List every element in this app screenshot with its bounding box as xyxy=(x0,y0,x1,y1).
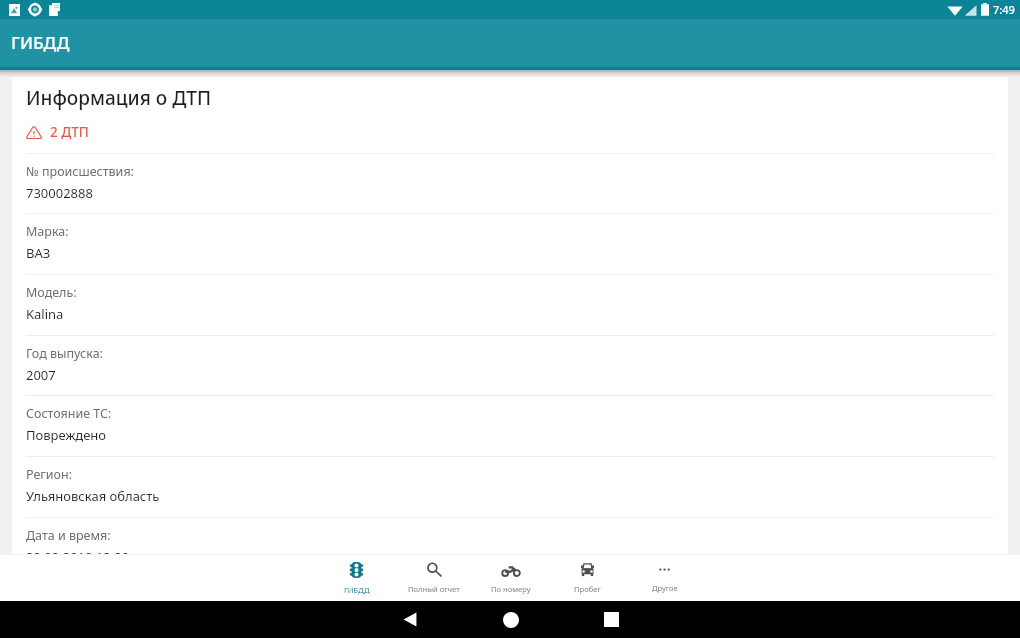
button[interactable]: Модель: xyxy=(12,275,1008,335)
staticText: Регион: xyxy=(26,466,73,483)
staticText: Марка: xyxy=(26,223,69,240)
staticText: Состояние ТС: xyxy=(26,405,112,422)
button[interactable]: Recents xyxy=(561,601,662,638)
staticText: 22.02.2018 13:20 xyxy=(26,548,130,554)
button[interactable]: Регион: xyxy=(12,457,1008,517)
staticText: Год выпуска: xyxy=(26,345,103,362)
staticText: Дата и время: xyxy=(26,527,111,544)
staticText: Полный отчет xyxy=(408,584,460,594)
staticText: ВАЗ xyxy=(26,244,51,262)
staticText: Информация о ДТП xyxy=(26,85,212,111)
staticText: По номеру xyxy=(491,584,531,594)
button[interactable]: ГИБДД xyxy=(318,555,395,601)
staticText: Другое xyxy=(652,583,678,593)
button[interactable]: Другое xyxy=(626,555,703,601)
staticText: 730002888 xyxy=(26,184,93,202)
button[interactable]: Марка: xyxy=(12,214,1008,274)
staticText: ГИБДД xyxy=(11,31,70,54)
button[interactable]: Год выпуска: xyxy=(12,336,1008,395)
button[interactable]: № происшествия: xyxy=(12,154,1008,213)
button[interactable]: Пробег xyxy=(549,555,626,601)
staticText: 2007 xyxy=(26,366,56,384)
button[interactable]: По номеру xyxy=(472,555,549,601)
staticText: Ульяновская область xyxy=(26,487,160,505)
staticText: Пробег xyxy=(574,584,601,594)
staticText: 2 ДТП xyxy=(50,123,89,141)
staticText: Повреждено xyxy=(26,426,107,444)
staticText: ГИБДД xyxy=(344,585,370,595)
staticText: 7:49 xyxy=(993,2,1015,17)
button[interactable]: Состояние ТС: xyxy=(12,396,1008,456)
staticText: Модель: xyxy=(26,284,77,301)
staticText: Kalina xyxy=(26,305,64,323)
staticText: № происшествия: xyxy=(26,163,134,180)
button[interactable]: Полный отчет xyxy=(395,555,472,601)
button[interactable]: Дата и время: xyxy=(12,518,1008,554)
button[interactable]: Home xyxy=(460,601,561,638)
button[interactable]: Back xyxy=(359,601,460,638)
